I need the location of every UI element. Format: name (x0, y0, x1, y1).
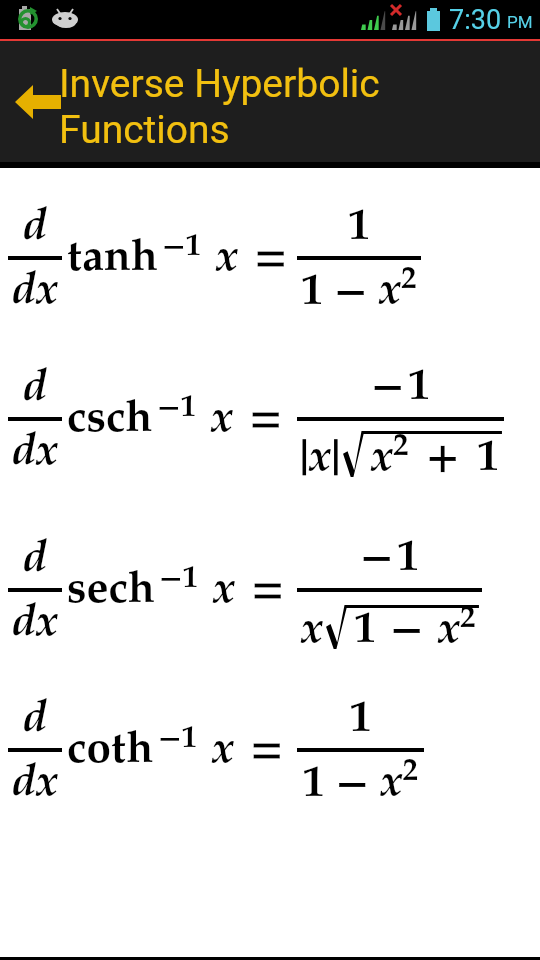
staticText: Functions (59, 107, 230, 153)
other: Back (0, 41, 58, 162)
staticText: PM (507, 12, 533, 32)
button[interactable]: Back (0, 41, 540, 162)
staticText: Inverse Hyperbolic (59, 61, 380, 107)
staticText: 7:30 (449, 4, 502, 36)
